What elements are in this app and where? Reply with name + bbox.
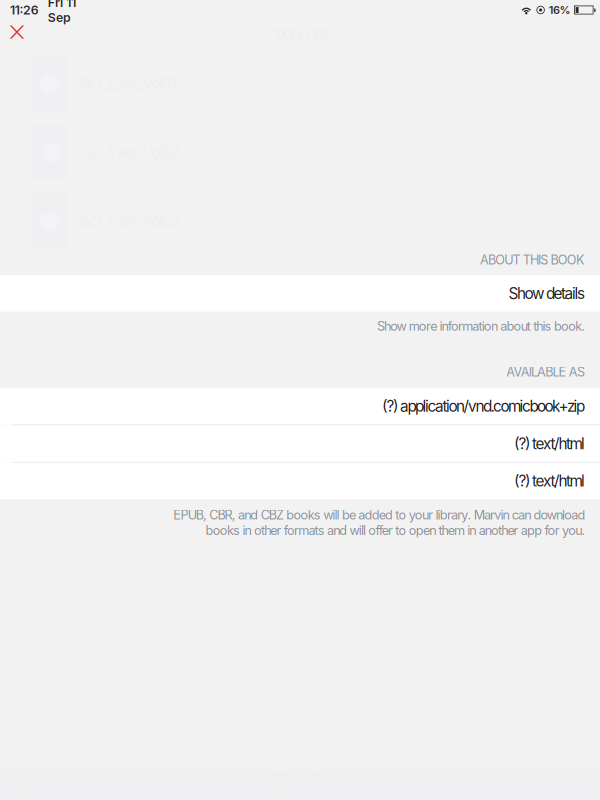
staticText: 16% xyxy=(549,3,570,17)
staticText: (?) text/html xyxy=(514,434,585,453)
staticText: (?) application/vnd.comicbook+zip xyxy=(382,397,585,416)
button[interactable]: (?) text/html xyxy=(0,463,600,499)
staticText: EPUB, CBR, and CBZ books will be added t… xyxy=(173,507,585,538)
button[interactable]: Close xyxy=(2,20,35,49)
staticText: 11:26 xyxy=(10,3,39,17)
staticText: Show more information about this book. xyxy=(376,319,585,334)
button[interactable]: Show details xyxy=(0,275,600,312)
button[interactable]: (?) application/vnd.comicbook+zip xyxy=(0,388,600,424)
staticText: ABOUT THIS BOOK xyxy=(480,252,585,268)
staticText: Show details xyxy=(508,284,585,303)
staticText: (?) text/html xyxy=(514,472,585,490)
staticText: AVAILABLE AS xyxy=(506,364,585,380)
button[interactable]: (?) text/html xyxy=(0,425,600,462)
staticText: Fri 11 Sep xyxy=(48,0,76,25)
